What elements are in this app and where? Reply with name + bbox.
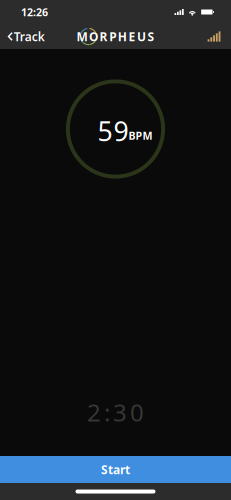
staticText: BPM (128, 128, 152, 143)
staticText: : (104, 396, 110, 428)
staticText: 9 (113, 113, 128, 149)
staticText: 12:26 (21, 5, 48, 19)
button[interactable]: Track (0, 22, 53, 50)
staticText: S (148, 28, 155, 44)
staticText: 0 (130, 396, 144, 428)
staticText: 3 (113, 396, 127, 428)
staticText: E (128, 28, 135, 44)
staticText: 2 (87, 396, 101, 428)
staticText: O (89, 28, 98, 44)
staticText: 5 (97, 113, 112, 149)
staticText: P (109, 28, 116, 44)
staticText: U (137, 28, 146, 44)
staticText: H (118, 28, 127, 44)
staticText: Start (101, 461, 130, 477)
button[interactable]: Signal strength (198, 25, 231, 48)
staticText: R (100, 28, 108, 44)
staticText: M (76, 28, 87, 44)
staticText: Track (14, 28, 45, 44)
button[interactable]: Start (0, 456, 231, 483)
